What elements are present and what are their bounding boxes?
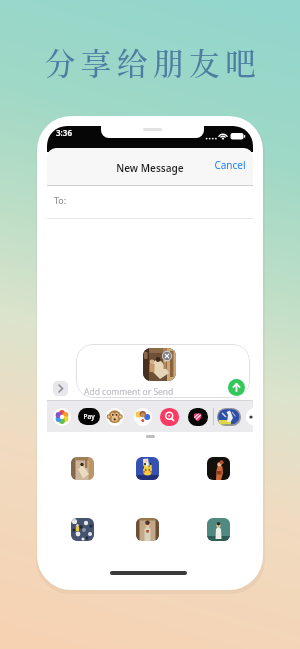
button[interactable] <box>136 518 159 541</box>
button[interactable] <box>143 348 176 381</box>
button[interactable] <box>207 457 230 480</box>
button[interactable] <box>47 185 253 219</box>
staticText: Add comment or Send <box>84 386 174 398</box>
button[interactable] <box>134 408 152 426</box>
button[interactable] <box>188 408 208 426</box>
button[interactable] <box>53 381 68 396</box>
button[interactable] <box>76 344 250 398</box>
staticText: 3:36 <box>52 127 76 140</box>
button[interactable] <box>53 408 71 426</box>
button[interactable] <box>207 518 230 541</box>
button[interactable] <box>160 408 179 426</box>
staticText: 分享给朋友吧 <box>3 40 300 84</box>
staticText: Pay <box>78 412 100 422</box>
button[interactable] <box>217 408 241 426</box>
button[interactable] <box>228 379 245 396</box>
button[interactable] <box>71 457 94 480</box>
button[interactable] <box>106 408 124 426</box>
button[interactable] <box>246 408 253 426</box>
button[interactable] <box>71 518 94 541</box>
staticText: New Message <box>47 161 253 177</box>
button[interactable] <box>136 457 159 480</box>
button[interactable]: Cancel <box>209 154 251 178</box>
button[interactable]: Pay <box>78 408 100 425</box>
staticText: Cancel <box>209 158 251 174</box>
staticText: To: <box>54 194 67 206</box>
